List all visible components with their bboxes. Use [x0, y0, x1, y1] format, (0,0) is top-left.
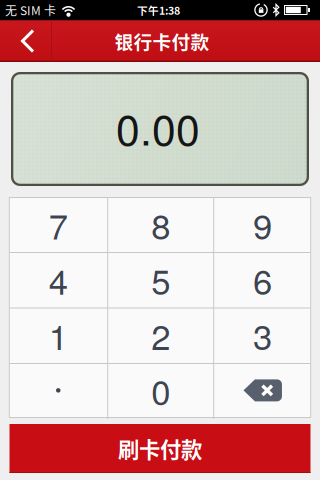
staticText: 0 — [151, 366, 170, 415]
button[interactable]: 8 — [108, 197, 214, 252]
staticText: 5 — [151, 255, 170, 305]
staticText: 无 SIM 卡 — [5, 1, 56, 19]
staticText: 刷卡付款 — [118, 433, 202, 464]
button[interactable]: 6 — [214, 252, 311, 307]
staticText: 8 — [151, 200, 170, 249]
staticText: 6 — [253, 255, 272, 305]
staticText: 9 — [253, 200, 272, 249]
button[interactable]: 3 — [214, 307, 311, 363]
button[interactable]: 2 — [108, 307, 214, 363]
staticText: 下午1:38 — [137, 2, 180, 18]
staticText: 2 — [151, 310, 170, 360]
button[interactable]: 0 — [108, 363, 214, 418]
button[interactable]: 4 — [9, 252, 108, 307]
button[interactable]: Delete — [214, 363, 311, 418]
button[interactable]: 刷卡付款 — [9, 424, 310, 473]
button[interactable]: Back — [0, 20, 52, 62]
button[interactable]: 7 — [9, 197, 108, 252]
staticText: 7 — [49, 200, 68, 249]
button[interactable]: Decimal point — [9, 363, 108, 418]
button[interactable]: 1 — [9, 307, 108, 363]
staticText: 银行卡付款 — [114, 27, 209, 54]
staticText: 0.00 — [116, 96, 200, 158]
button[interactable]: 9 — [214, 197, 311, 252]
staticText: 1 — [49, 310, 68, 360]
staticText: 4 — [49, 255, 68, 305]
staticText: 3 — [253, 310, 272, 360]
button[interactable]: 5 — [108, 252, 214, 307]
